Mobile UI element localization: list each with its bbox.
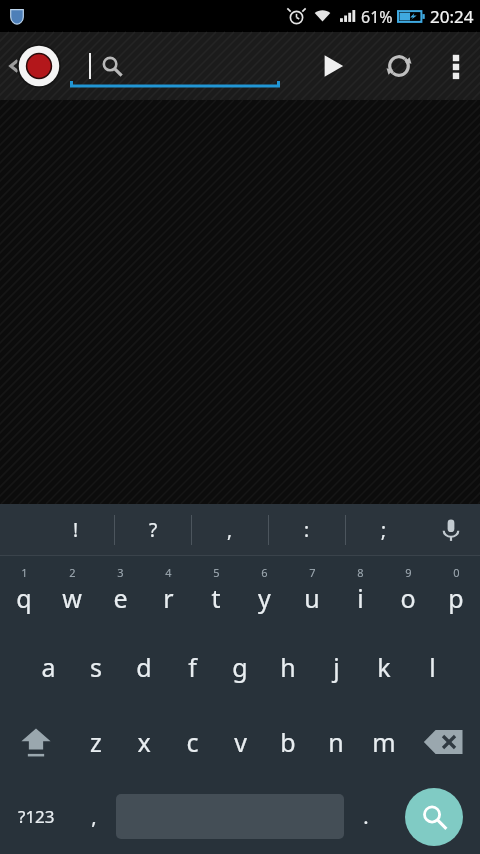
button[interactable] — [70, 32, 280, 100]
staticText: v — [234, 725, 247, 759]
staticText: s — [90, 650, 102, 684]
button[interactable]: Refresh — [366, 32, 432, 100]
staticText: h — [280, 650, 296, 684]
staticText: 2 — [69, 565, 76, 580]
staticText: x — [137, 725, 151, 759]
button[interactable]: 6 — [240, 556, 288, 624]
staticText: j — [333, 650, 340, 684]
button[interactable]: f — [168, 630, 216, 704]
staticText: y — [258, 581, 271, 615]
staticText: g — [232, 650, 248, 684]
staticText: 8 — [357, 565, 364, 580]
staticText: 6 — [261, 565, 268, 580]
button[interactable]: c — [168, 704, 216, 779]
button[interactable]: 1 — [0, 556, 48, 624]
staticText: f — [188, 650, 197, 684]
button[interactable]: b — [264, 704, 312, 779]
button[interactable]: 2 — [48, 556, 96, 624]
staticText: c — [186, 725, 199, 759]
button[interactable]: m — [360, 704, 408, 779]
staticText: q — [16, 581, 32, 615]
button[interactable]: , — [192, 504, 268, 556]
staticText: e — [113, 581, 128, 615]
staticText: ! — [73, 517, 79, 543]
staticText: 20:24 — [430, 5, 474, 28]
staticText: o — [400, 581, 416, 615]
staticText: 9 — [405, 565, 412, 580]
button[interactable]: ; — [346, 504, 422, 556]
button[interactable]: Back — [4, 56, 24, 76]
staticText: 3 — [117, 565, 124, 580]
button[interactable]: , — [72, 779, 116, 854]
staticText: 5 — [213, 565, 220, 580]
button[interactable]: 8 — [336, 556, 384, 624]
staticText: u — [304, 581, 320, 615]
staticText: : — [304, 517, 310, 543]
staticText: m — [372, 725, 396, 759]
button[interactable]: a — [24, 630, 72, 704]
button[interactable]: g — [216, 630, 264, 704]
staticText: , — [91, 803, 97, 830]
staticText: r — [163, 581, 174, 615]
button[interactable]: d — [120, 630, 168, 704]
button[interactable]: 7 — [288, 556, 336, 624]
button[interactable]: z — [72, 704, 120, 779]
button[interactable]: ? — [115, 504, 191, 556]
staticText: 4 — [165, 565, 172, 580]
button[interactable]: 0 — [432, 556, 480, 624]
button[interactable]: 5 — [192, 556, 240, 624]
staticText: ; — [381, 517, 387, 543]
button[interactable]: s — [72, 630, 120, 704]
button[interactable]: l — [408, 630, 456, 704]
staticText: , — [227, 517, 233, 543]
button[interactable]: Shift — [0, 704, 72, 779]
staticText: 1 — [21, 565, 28, 580]
staticText: . — [363, 803, 369, 830]
button[interactable]: h — [264, 630, 312, 704]
button[interactable]: App logo — [17, 44, 61, 88]
button[interactable]: 3 — [96, 556, 144, 624]
staticText: ? — [149, 517, 158, 543]
button[interactable]: More options — [432, 32, 480, 100]
staticText: b — [280, 725, 296, 759]
staticText: k — [377, 650, 391, 684]
button[interactable]: ?123 — [0, 779, 72, 854]
staticText: ?123 — [18, 805, 55, 828]
button[interactable]: x — [120, 704, 168, 779]
button[interactable]: v — [216, 704, 264, 779]
staticText: w — [62, 581, 82, 615]
button[interactable]: : — [269, 504, 345, 556]
button[interactable]: Search — [405, 788, 463, 846]
staticText: l — [429, 650, 436, 684]
button[interactable]: Play — [300, 32, 366, 100]
button[interactable]: . — [344, 779, 388, 854]
staticText: 7 — [309, 565, 316, 580]
staticText: d — [136, 650, 152, 684]
staticText: z — [90, 725, 102, 759]
staticText: a — [41, 650, 56, 684]
button[interactable]: j — [312, 630, 360, 704]
staticText: 61% — [361, 6, 393, 28]
button[interactable]: 9 — [384, 556, 432, 624]
staticText: 0 — [453, 565, 460, 580]
staticText: p — [448, 581, 464, 615]
button[interactable]: Voice input — [422, 504, 480, 556]
staticText: t — [211, 581, 221, 615]
button[interactable]: ! — [38, 504, 114, 556]
staticText: n — [328, 725, 344, 759]
button[interactable]: 4 — [144, 556, 192, 624]
button[interactable]: k — [360, 630, 408, 704]
staticText: i — [357, 581, 364, 615]
button[interactable]: Backspace — [408, 704, 480, 779]
button[interactable]: n — [312, 704, 360, 779]
